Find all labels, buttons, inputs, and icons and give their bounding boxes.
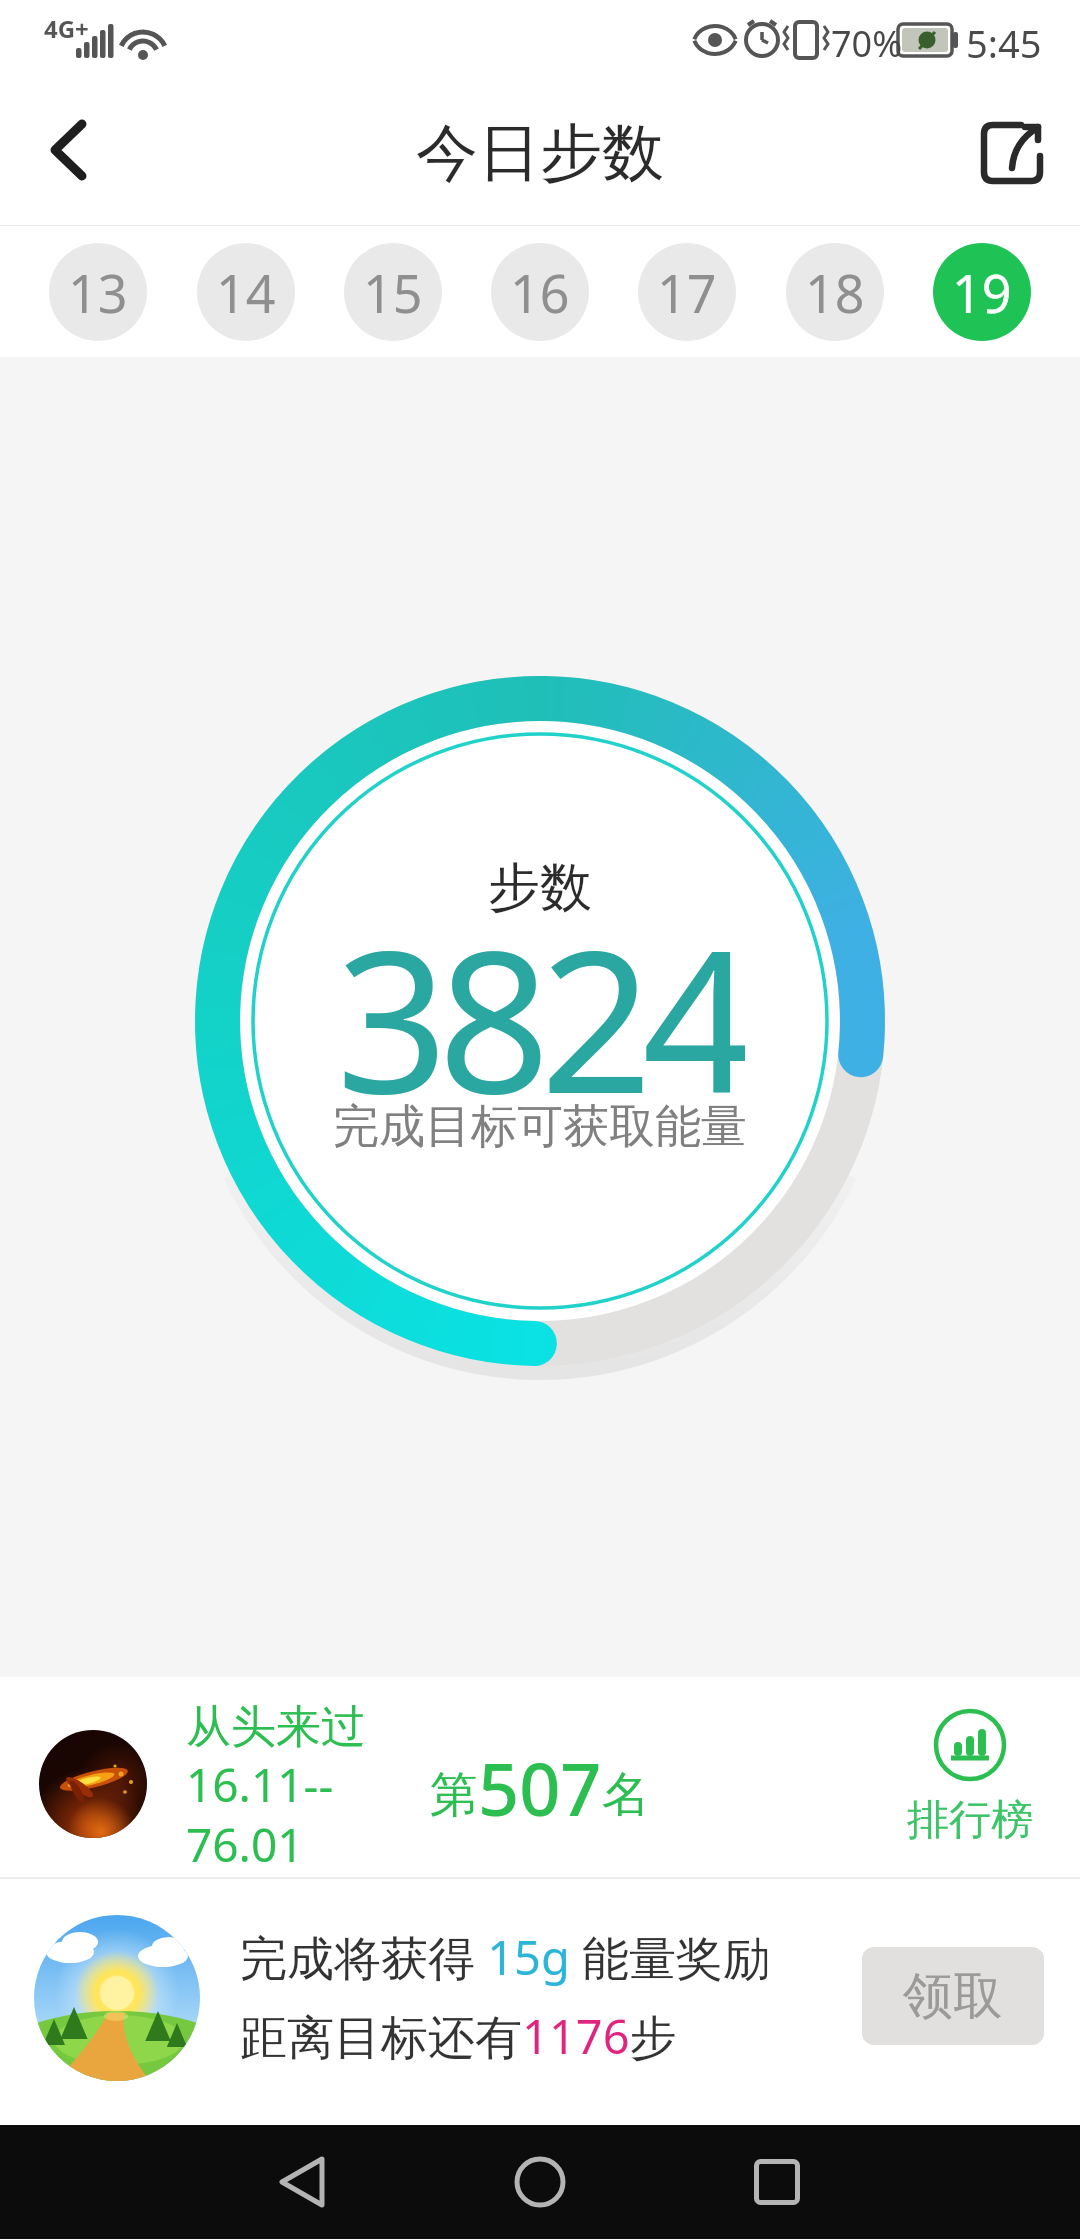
- staticText: 距离目标还有1176步: [240, 2004, 677, 2068]
- button[interactable]: [20, 102, 120, 202]
- staticText: 名: [602, 1765, 650, 1825]
- staticText: 排行榜: [907, 1794, 1033, 1847]
- button[interactable]: [250, 2130, 354, 2234]
- staticText: 完成目标可获取能量: [333, 1098, 747, 1156]
- staticText: 14: [216, 257, 276, 328]
- staticText: 领取: [903, 1965, 1003, 2028]
- button[interactable]: 13: [49, 243, 147, 341]
- staticText: 76.01: [186, 1813, 304, 1876]
- button[interactable]: 排行榜: [907, 1708, 1033, 1847]
- staticText: 16.11--: [186, 1753, 334, 1816]
- staticText: 今日步数: [0, 114, 1080, 192]
- button[interactable]: [488, 2130, 592, 2234]
- staticText: 18: [805, 257, 865, 328]
- button[interactable]: 17: [638, 243, 736, 341]
- staticText: 完成将获得 15g 能量奖励: [240, 1925, 771, 1989]
- button[interactable]: 18: [786, 243, 884, 341]
- staticText: 3824: [336, 883, 745, 1143]
- staticText: 507: [478, 1739, 602, 1835]
- button[interactable]: 14: [197, 243, 295, 341]
- staticText: 15: [363, 257, 423, 328]
- staticText: 17: [657, 257, 717, 328]
- button[interactable]: 19: [933, 243, 1031, 341]
- staticText: 从头来过: [186, 1699, 366, 1756]
- staticText: 13: [68, 257, 128, 328]
- staticText: 70%: [831, 19, 903, 68]
- button[interactable]: [725, 2130, 829, 2234]
- staticText: 16: [510, 257, 570, 328]
- button[interactable]: 16: [491, 243, 589, 341]
- staticText: 第: [430, 1765, 478, 1825]
- staticText: 5:45: [966, 17, 1042, 69]
- button[interactable]: 领取: [862, 1947, 1044, 2045]
- staticText: 4G+: [44, 12, 89, 45]
- button[interactable]: 从头来过: [0, 1677, 1080, 1877]
- staticText: 步数: [488, 855, 592, 921]
- button[interactable]: 15: [344, 243, 442, 341]
- button[interactable]: [972, 113, 1052, 193]
- staticText: 19: [952, 257, 1012, 328]
